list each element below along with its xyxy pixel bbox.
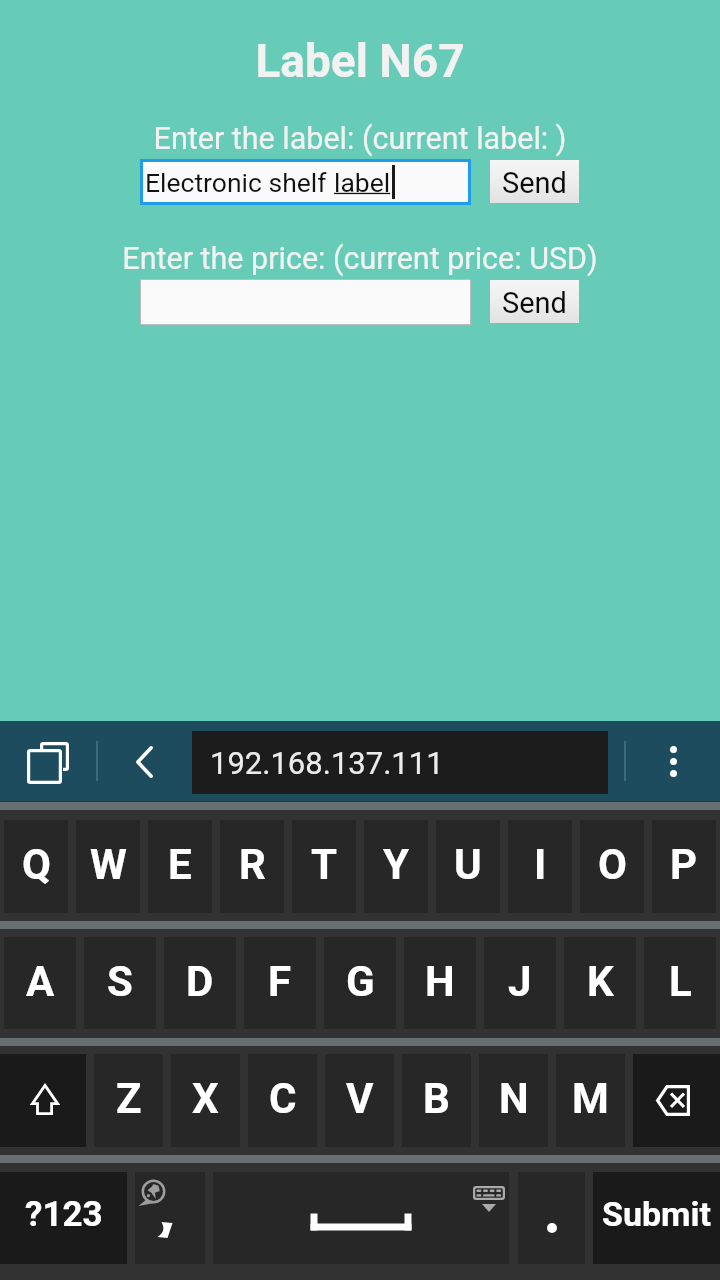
- staticText: F: [268, 957, 292, 1006]
- button[interactable]: 192.168.137.111: [192, 731, 608, 794]
- button[interactable]: X: [171, 1054, 240, 1147]
- staticText: Enter the price: (current price: USD): [0, 241, 720, 277]
- button[interactable]: S: [84, 937, 156, 1029]
- button[interactable]: J: [484, 937, 556, 1029]
- button[interactable]: D: [164, 937, 236, 1029]
- button[interactable]: Electronic shelf: [140, 159, 471, 205]
- staticText: I: [534, 840, 547, 889]
- staticText: X: [192, 1074, 219, 1123]
- button[interactable]: O: [580, 820, 644, 913]
- staticText: V: [346, 1074, 374, 1123]
- staticText: Send: [502, 286, 567, 320]
- button[interactable]: ?123: [0, 1172, 127, 1264]
- button[interactable]: T: [292, 820, 356, 913]
- button[interactable]: W: [76, 820, 140, 913]
- staticText: W: [90, 840, 127, 889]
- button[interactable]: Submit: [593, 1172, 720, 1264]
- staticText: Enter the label: (current label: ): [0, 121, 720, 157]
- button[interactable]: V: [325, 1054, 394, 1147]
- button[interactable]: Shift: [0, 1054, 86, 1147]
- button[interactable]: Comma and language: [135, 1172, 205, 1264]
- staticText: D: [186, 957, 214, 1006]
- staticText: Y: [383, 840, 410, 889]
- button[interactable]: More options: [626, 721, 720, 801]
- staticText: E: [168, 840, 192, 889]
- staticText: Submit: [602, 1194, 712, 1234]
- staticText: R: [239, 840, 266, 889]
- staticText: H: [425, 957, 455, 1006]
- button[interactable]: U: [436, 820, 500, 913]
- button[interactable]: Period: [518, 1172, 585, 1264]
- button[interactable]: M: [556, 1054, 625, 1147]
- button[interactable]: Z: [94, 1054, 163, 1147]
- staticText: Send: [502, 166, 567, 200]
- button[interactable]: Backspace: [633, 1054, 720, 1147]
- button[interactable]: [140, 279, 471, 325]
- button[interactable]: P: [652, 820, 716, 913]
- staticText: label: [334, 167, 391, 198]
- button[interactable]: Tabs: [0, 721, 96, 801]
- button[interactable]: L: [644, 937, 716, 1029]
- button[interactable]: Send: [489, 279, 580, 324]
- staticText: G: [346, 957, 375, 1006]
- button[interactable]: G: [324, 937, 396, 1029]
- button[interactable]: Q: [4, 820, 68, 913]
- staticText: S: [107, 957, 133, 1006]
- staticText: J: [508, 957, 532, 1006]
- staticText: L: [669, 957, 692, 1006]
- button[interactable]: F: [244, 937, 316, 1029]
- staticText: ?123: [25, 1194, 103, 1235]
- staticText: N: [499, 1074, 529, 1123]
- button[interactable]: N: [479, 1054, 548, 1147]
- button[interactable]: Send: [489, 159, 580, 204]
- button[interactable]: H: [404, 937, 476, 1029]
- button[interactable]: E: [148, 820, 212, 913]
- staticText: M: [572, 1074, 609, 1123]
- button[interactable]: A: [4, 937, 76, 1029]
- staticText: B: [423, 1074, 450, 1123]
- button[interactable]: Space: [213, 1172, 509, 1264]
- staticText: C: [269, 1074, 297, 1123]
- staticText: Q: [22, 840, 51, 889]
- staticText: U: [454, 840, 482, 889]
- button[interactable]: Y: [364, 820, 428, 913]
- button[interactable]: Back: [98, 721, 192, 801]
- staticText: 192.168.137.111: [210, 745, 444, 781]
- button[interactable]: C: [248, 1054, 317, 1147]
- button[interactable]: K: [564, 937, 636, 1029]
- staticText: T: [311, 840, 338, 889]
- staticText: K: [587, 957, 614, 1006]
- button[interactable]: I: [508, 820, 572, 913]
- staticText: P: [670, 840, 698, 889]
- button[interactable]: R: [220, 820, 284, 913]
- staticText: Z: [116, 1074, 142, 1123]
- staticText: O: [598, 840, 627, 889]
- staticText: Electronic shelf: [145, 167, 334, 198]
- button[interactable]: B: [402, 1054, 471, 1147]
- staticText: A: [26, 957, 55, 1006]
- staticText: Label N67: [0, 34, 720, 88]
